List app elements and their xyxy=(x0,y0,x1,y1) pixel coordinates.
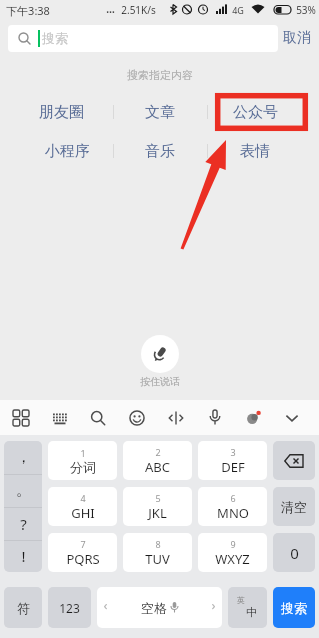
staticText: 4 xyxy=(80,492,86,504)
staticText: 搜索指定内容 xyxy=(127,68,193,82)
button[interactable]: 。 xyxy=(4,474,42,507)
button[interactable]: 4 xyxy=(48,487,117,526)
button[interactable]: 音乐 xyxy=(113,140,207,162)
button[interactable]: 0 xyxy=(273,533,315,572)
staticText: DEF xyxy=(221,458,245,476)
button[interactable]: 5 xyxy=(123,487,192,526)
staticText: 空格 xyxy=(141,600,167,616)
staticText: ? xyxy=(20,514,27,534)
button[interactable]: 7 xyxy=(48,533,117,572)
staticText: 2.51K/s xyxy=(121,3,156,17)
staticText: 搜索 xyxy=(42,30,68,46)
button[interactable]: 123 xyxy=(48,587,91,628)
staticText: 9 xyxy=(230,538,236,550)
button[interactable] xyxy=(242,407,264,429)
button[interactable] xyxy=(10,407,32,429)
staticText: 音乐 xyxy=(145,142,175,161)
button[interactable]: 朋友圈 xyxy=(5,101,118,123)
staticText: 按住说话 xyxy=(140,375,180,388)
staticText: JKL xyxy=(148,504,167,522)
staticText: 清空 xyxy=(281,499,307,515)
button[interactable]: 搜索 xyxy=(8,25,278,52)
button[interactable] xyxy=(204,407,226,429)
staticText: 中 xyxy=(246,605,257,619)
button[interactable] xyxy=(141,335,179,373)
button[interactable]: 公众号 xyxy=(207,101,303,123)
button[interactable]: ， xyxy=(4,441,42,474)
staticText: 3 xyxy=(230,446,236,458)
button[interactable] xyxy=(281,407,303,429)
staticText: › xyxy=(211,596,216,614)
staticText: 1 xyxy=(80,447,86,459)
staticText: WXYZ xyxy=(215,550,250,568)
staticText: PQRS xyxy=(66,550,100,568)
button[interactable]: 3 xyxy=(198,441,267,480)
staticText: 文章 xyxy=(145,103,175,122)
button[interactable]: ! xyxy=(4,540,42,572)
staticText: MNO xyxy=(217,504,249,522)
staticText: 公众号 xyxy=(233,103,278,122)
button[interactable] xyxy=(165,407,187,429)
button[interactable]: 小程序 xyxy=(11,140,124,162)
button[interactable] xyxy=(126,407,148,429)
staticText: 2 xyxy=(155,446,161,458)
staticText: 53% xyxy=(296,3,316,17)
button[interactable]: 清空 xyxy=(273,487,315,526)
staticText: 6 xyxy=(230,492,236,504)
button[interactable]: 表情 xyxy=(207,140,303,162)
staticText: 4G xyxy=(232,4,244,16)
button[interactable]: ? xyxy=(4,507,42,540)
button[interactable]: 2 xyxy=(123,441,192,480)
button[interactable] xyxy=(87,407,109,429)
staticText: 5 xyxy=(155,492,161,504)
staticText: 小程序 xyxy=(45,142,90,161)
staticText: 。 xyxy=(16,481,31,500)
button[interactable]: 6 xyxy=(198,487,267,526)
staticText: 7 xyxy=(80,538,86,550)
staticText: 8 xyxy=(155,538,161,550)
staticText: 表情 xyxy=(240,142,270,161)
button[interactable]: 英 xyxy=(228,587,267,628)
button[interactable]: 取消 xyxy=(283,20,311,56)
button[interactable]: 文章 xyxy=(113,101,207,123)
staticText: 123 xyxy=(59,600,80,616)
button[interactable]: 8 xyxy=(123,533,192,572)
staticText: 朋友圈 xyxy=(39,103,84,122)
staticText: 符 xyxy=(17,600,30,616)
staticText: ! xyxy=(21,546,26,566)
staticText: 下午3:38 xyxy=(6,3,50,18)
staticText: ‹ xyxy=(103,596,108,614)
staticText: GHI xyxy=(71,504,95,522)
button[interactable] xyxy=(273,441,315,480)
button[interactable]: 符 xyxy=(4,587,42,628)
staticText: ABC xyxy=(145,458,170,476)
staticText: 分词 xyxy=(70,459,96,475)
staticText: ， xyxy=(16,448,31,467)
staticText: 英 xyxy=(237,595,245,605)
staticText: 搜索 xyxy=(281,600,307,616)
staticText: 取消 xyxy=(283,29,311,47)
button[interactable]: 9 xyxy=(198,533,267,572)
staticText: TUV xyxy=(145,550,170,568)
button[interactable]: 搜索 xyxy=(273,587,315,628)
staticText: 0 xyxy=(290,543,299,563)
button[interactable]: 1 xyxy=(48,441,117,480)
button[interactable]: 空格 xyxy=(97,587,222,628)
button[interactable] xyxy=(49,407,71,429)
staticText: … xyxy=(106,2,115,16)
